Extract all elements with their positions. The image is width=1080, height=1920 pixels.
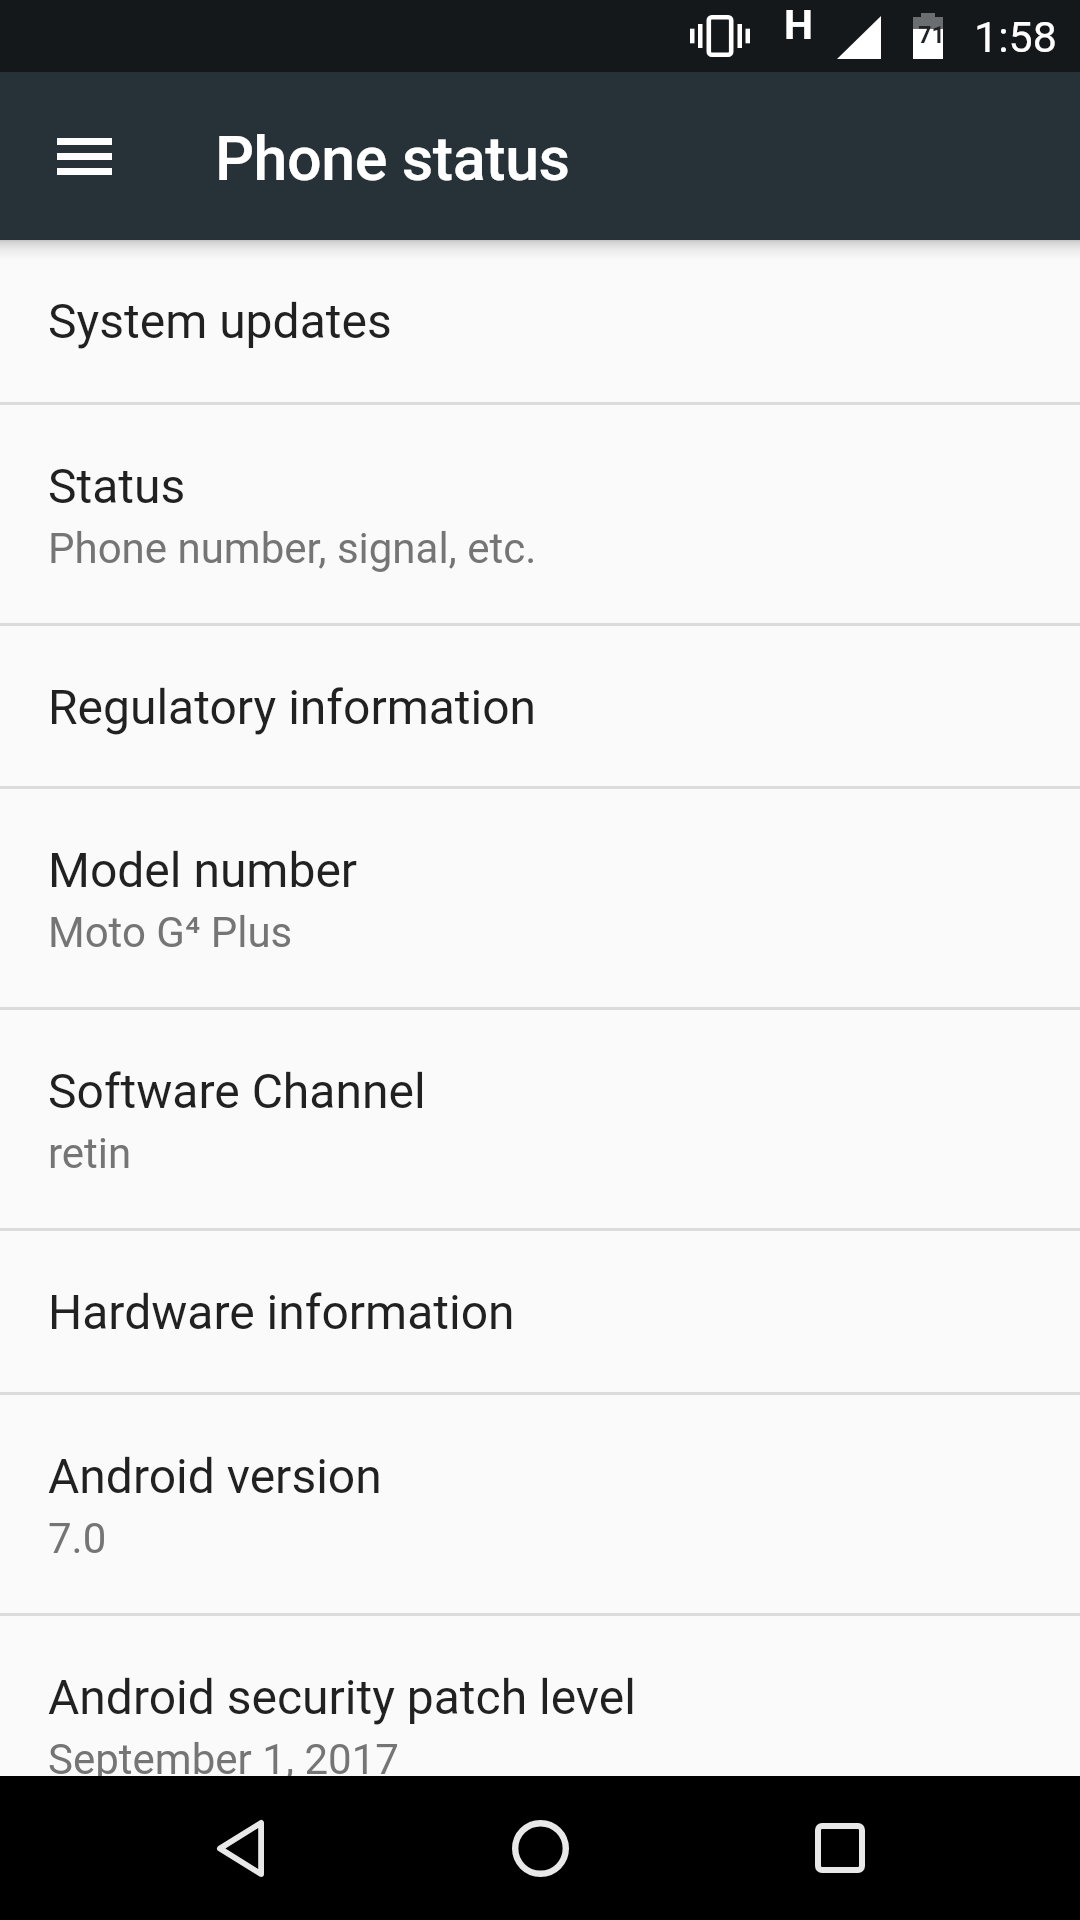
button[interactable]: Hardware information (0, 1231, 1080, 1392)
button[interactable]: Android version (0, 1395, 1080, 1613)
staticText: retin (48, 1129, 132, 1178)
button[interactable]: Software Channel (0, 1010, 1080, 1228)
button[interactable]: Home (460, 1776, 620, 1920)
button[interactable]: Back (160, 1776, 320, 1920)
button[interactable]: Status (0, 405, 1080, 623)
button[interactable]: Regulatory information (0, 626, 1080, 786)
staticText: Moto G⁴ Plus (48, 908, 293, 957)
staticText: Android security patch level (48, 1669, 636, 1725)
button[interactable]: Recent apps (760, 1776, 920, 1920)
staticText: Android version (48, 1448, 382, 1504)
staticText: Status (48, 458, 186, 514)
staticText: 71 (918, 22, 945, 49)
button[interactable]: Open navigation drawer (28, 72, 140, 240)
staticText: Phone status (215, 123, 570, 194)
button[interactable]: System updates (0, 240, 1080, 402)
staticText: System updates (48, 293, 392, 349)
staticText: Phone number, signal, etc. (48, 524, 537, 573)
button[interactable]: Model number (0, 789, 1080, 1007)
staticText: Hardware information (48, 1284, 515, 1340)
staticText: 7.0 (48, 1514, 107, 1563)
button[interactable]: Android security patch level (0, 1616, 1080, 1836)
staticText: September 1, 2017 (48, 1735, 399, 1784)
staticText: H (784, 1, 813, 49)
staticText: 1:58 (974, 12, 1057, 62)
staticText: Regulatory information (48, 679, 537, 735)
staticText: Software Channel (48, 1063, 426, 1119)
staticText: Model number (48, 842, 358, 898)
